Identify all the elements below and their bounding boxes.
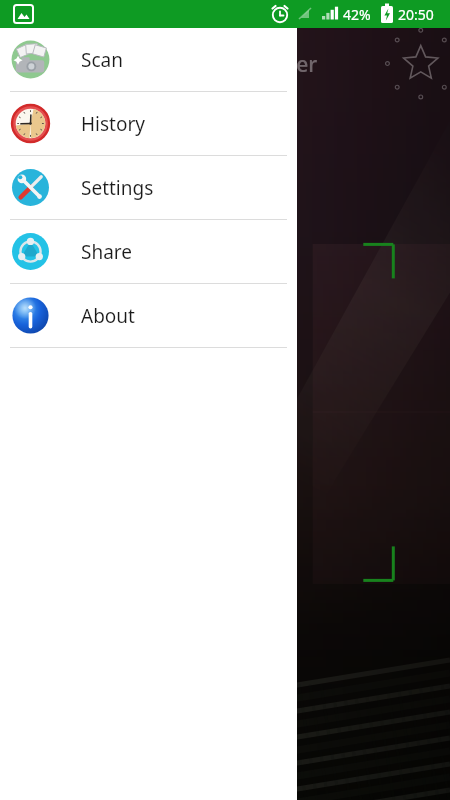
- other: History: [9, 102, 52, 145]
- other: Share: [9, 230, 52, 273]
- staticText: Scan: [81, 47, 123, 73]
- other: Settings: [9, 166, 52, 209]
- button[interactable]: Share: [0, 220, 297, 283]
- button[interactable]: Scan: [0, 28, 297, 91]
- button[interactable]: About: [0, 284, 297, 347]
- staticText: History: [81, 111, 145, 137]
- button[interactable]: Settings: [0, 156, 297, 219]
- other: Scan: [9, 38, 52, 81]
- button[interactable]: History: [0, 92, 297, 155]
- staticText: Share: [81, 239, 133, 265]
- other: About: [9, 294, 52, 337]
- staticText: 42%: [343, 5, 371, 24]
- staticText: Scanner: [236, 50, 318, 79]
- staticText: Settings: [81, 175, 154, 201]
- staticText: About: [81, 303, 135, 329]
- staticText: 20:50: [398, 5, 434, 24]
